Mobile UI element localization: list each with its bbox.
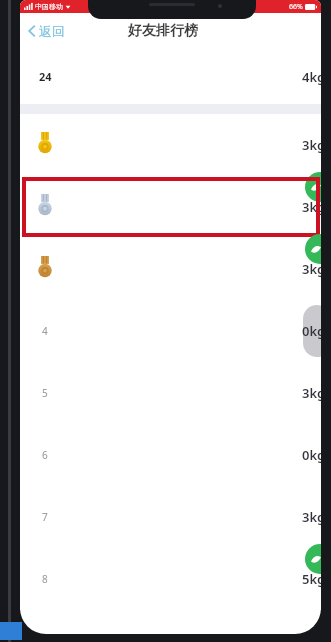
button[interactable]: Medal xyxy=(20,238,321,300)
staticText: 3kg xyxy=(302,136,321,154)
button[interactable]: 7 xyxy=(20,486,321,548)
staticText: 中国移动 xyxy=(35,2,63,11)
staticText: 3kg xyxy=(302,384,321,402)
staticText: 返回 xyxy=(39,23,65,39)
button[interactable]: Medal xyxy=(20,114,321,176)
staticText: 3kg xyxy=(302,198,321,216)
staticText: 7 xyxy=(42,510,48,524)
other: Medal xyxy=(38,256,52,282)
staticText: 3kg xyxy=(302,508,321,526)
button[interactable]: 返回 xyxy=(20,19,75,43)
staticText: 0kg xyxy=(302,322,321,340)
staticText: 3kg xyxy=(302,260,321,278)
staticText: 4kg xyxy=(302,68,321,86)
staticText: 8 xyxy=(42,572,48,586)
staticText: 6 xyxy=(42,448,48,462)
staticText: 0kg xyxy=(302,446,321,464)
button[interactable]: 4 xyxy=(20,300,321,362)
staticText: 好友排行榜 xyxy=(128,22,198,40)
staticText: 66% xyxy=(289,2,303,12)
staticText: 5 xyxy=(42,386,48,400)
staticText: 5kg xyxy=(302,570,321,588)
button[interactable]: 6 xyxy=(20,424,321,486)
staticText: 24 xyxy=(39,69,52,84)
button[interactable]: 5 xyxy=(20,362,321,424)
other: Medal xyxy=(38,132,52,158)
button[interactable]: Medal xyxy=(20,176,321,238)
other: Medal xyxy=(38,194,52,220)
staticText: 4 xyxy=(42,324,48,338)
button[interactable]: 8 xyxy=(20,548,321,610)
button[interactable]: 24 xyxy=(20,49,321,104)
